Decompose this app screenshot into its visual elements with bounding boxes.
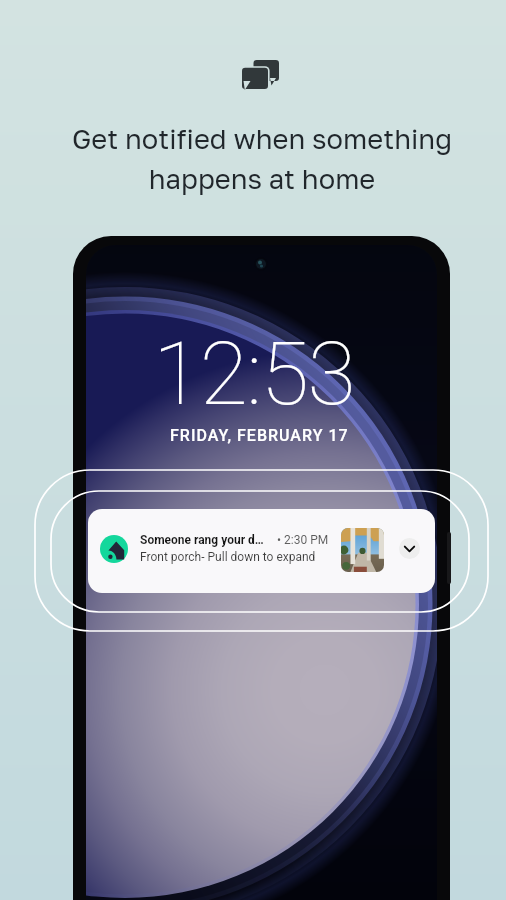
button[interactable]: Expand notification — [399, 538, 420, 559]
staticText: Front porch- Pull down to expand — [140, 550, 316, 564]
staticText: 12:53 — [153, 322, 355, 425]
staticText: FRIDAY, FEBRUARY 17 — [170, 426, 349, 445]
staticText: Someone rang your d… — [140, 533, 264, 547]
staticText: • 2:30 PM — [277, 533, 329, 547]
other: Notifications — [242, 60, 279, 90]
staticText: Get notified when something happens at h… — [9, 122, 506, 196]
button[interactable]: Someone rang your d… — [88, 509, 435, 593]
